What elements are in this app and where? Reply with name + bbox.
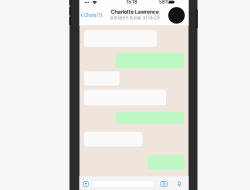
button[interactable]: Charlotte Lawrence profile photo [168, 7, 185, 24]
button[interactable]: Message [91, 180, 155, 187]
staticText: Chats [84, 12, 96, 18]
button[interactable]: Charlotte Lawrence [109, 9, 161, 20]
staticText: (1) [96, 12, 102, 18]
staticText: last seen today at 14:29 [110, 15, 160, 20]
staticText: 15:18 [126, 0, 137, 5]
staticText: Charlotte Lawrence [111, 9, 159, 15]
button[interactable]: Record voice message [177, 181, 181, 187]
button[interactable]: Camera [160, 181, 167, 187]
button[interactable]: Chats [79, 10, 103, 20]
button[interactable]: Add attachment [83, 181, 89, 187]
staticText: 58% [159, 0, 170, 5]
